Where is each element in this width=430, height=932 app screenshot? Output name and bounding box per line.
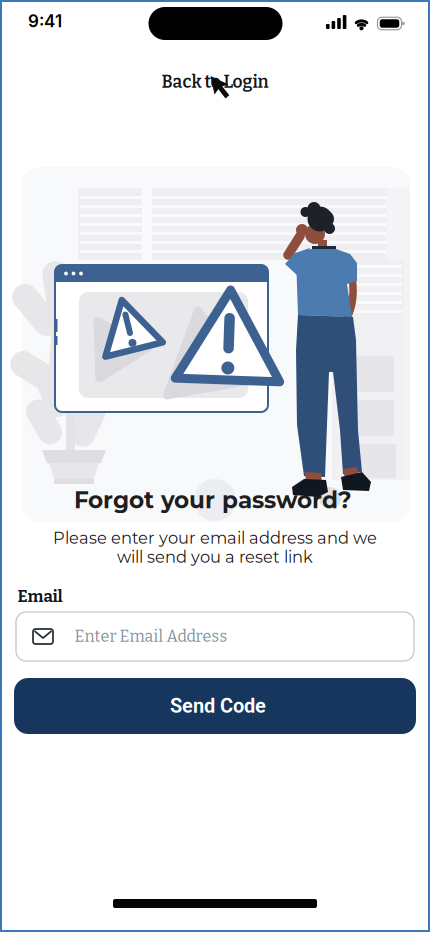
button[interactable]: Back to Login: [153, 68, 276, 96]
staticText: Back to Login: [161, 72, 268, 92]
staticText: will send you a reset link: [117, 547, 313, 567]
staticText: Send Code: [170, 694, 266, 718]
button[interactable]: Send Code: [14, 678, 416, 734]
staticText: Please enter your email address and we: [53, 528, 377, 548]
staticText: Forgot your password?: [74, 486, 352, 514]
staticText: Email: [17, 586, 62, 606]
staticText: 9:41: [28, 11, 62, 31]
button[interactable]: Enter Email Address: [16, 612, 414, 661]
staticText: Enter Email Address: [74, 627, 227, 646]
